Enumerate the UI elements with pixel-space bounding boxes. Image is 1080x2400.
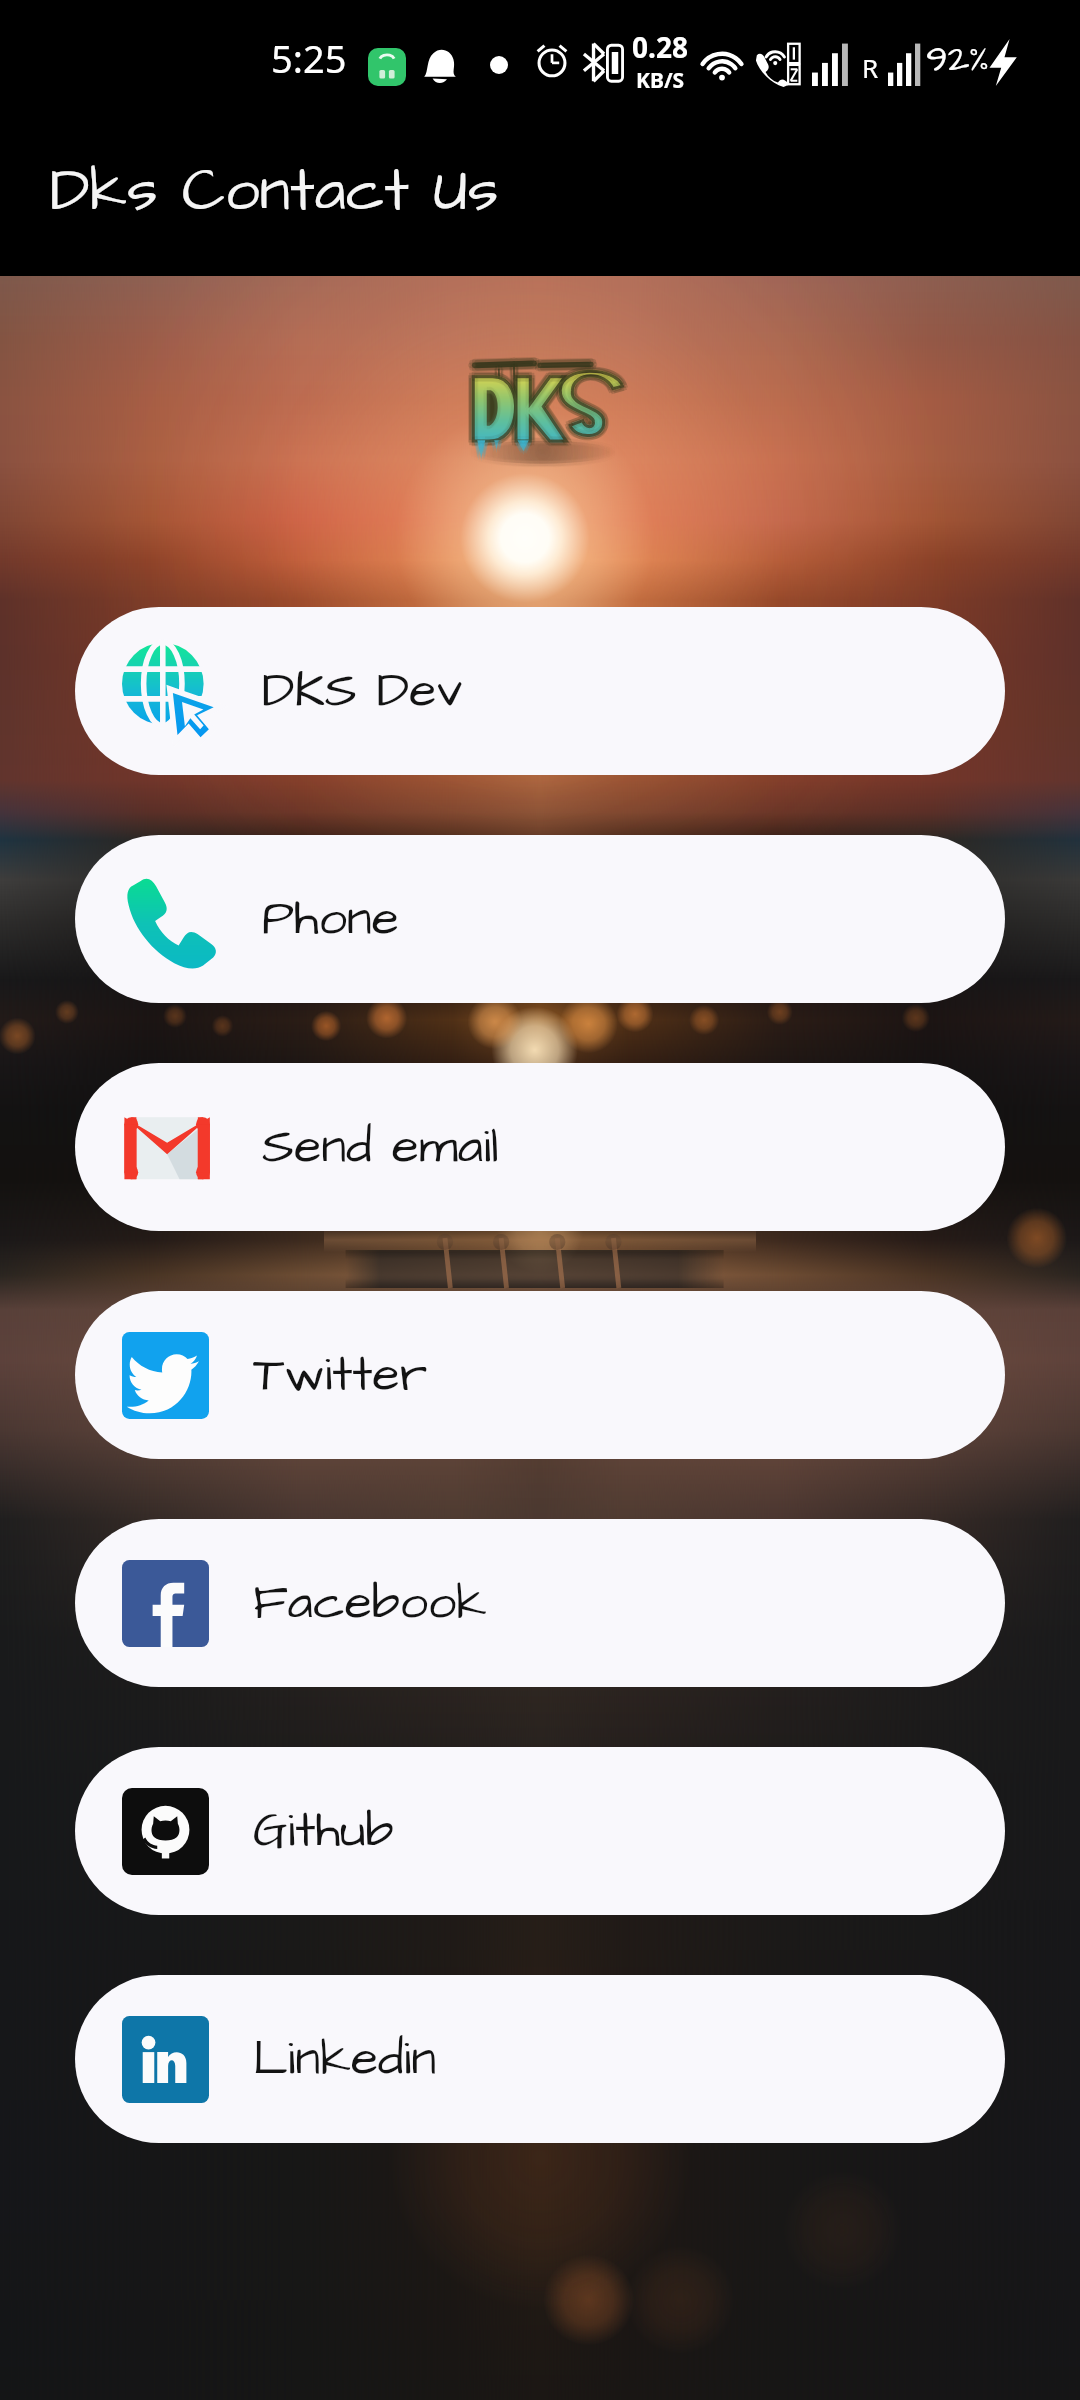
button[interactable]: Github (75, 1747, 1005, 1915)
staticText: Phone (262, 885, 399, 954)
staticText: KB/S (636, 66, 685, 95)
staticText: Twitter (253, 1341, 428, 1410)
staticText: Linkedin (253, 2025, 437, 2094)
staticText: 0.28 (632, 28, 688, 66)
staticText: DKS Dev (262, 657, 463, 726)
staticText: Dks Contact Us (50, 149, 499, 234)
other: DKS logo (465, 360, 615, 456)
staticText: Github (253, 1797, 394, 1866)
staticText: Facebook (253, 1569, 487, 1638)
staticText: R (862, 50, 879, 85)
button[interactable]: Facebook (75, 1519, 1005, 1687)
staticText: 92% (926, 34, 990, 87)
button[interactable]: Phone (75, 835, 1005, 1003)
button[interactable]: DKS Dev (75, 607, 1005, 775)
button[interactable]: Linkedin (75, 1975, 1005, 2143)
staticText: Send email (262, 1113, 499, 1182)
staticText: 5:25 (271, 32, 347, 84)
button[interactable]: Twitter (75, 1291, 1005, 1459)
button[interactable]: Send email (75, 1063, 1005, 1231)
